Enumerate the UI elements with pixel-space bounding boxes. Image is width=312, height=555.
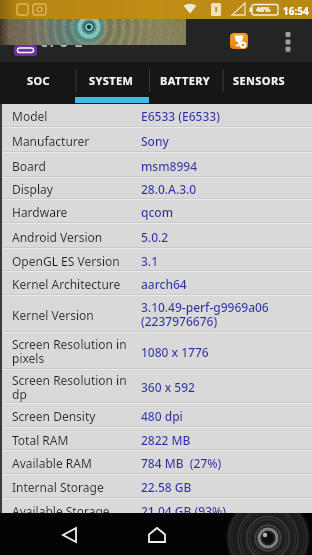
button[interactable]: Available RAM <box>0 451 312 475</box>
staticText: Screen Resolution in pixels <box>12 336 127 367</box>
staticText: 16:54 <box>283 4 309 18</box>
staticText: SYSTEM <box>89 73 134 88</box>
button[interactable]: BATTERY <box>148 62 222 98</box>
staticText: 5.0.2 <box>141 229 169 245</box>
button[interactable]: Display <box>0 178 312 200</box>
staticText: 46% <box>256 5 271 15</box>
button[interactable]: Kernel Architecture <box>0 272 312 296</box>
staticText: SENSORS <box>233 73 286 88</box>
staticText: 3.1 <box>141 253 158 269</box>
staticText: Screen Resolution in dp <box>12 372 127 403</box>
staticText: 480 dpi <box>141 408 183 424</box>
staticText: Kernel Version <box>12 307 94 323</box>
button[interactable]: Manufacturer <box>0 128 312 153</box>
button[interactable]: OpenGL ES Version <box>0 249 312 272</box>
staticText: Manufacturer <box>12 133 90 149</box>
staticText: 21.04 GB (93%) <box>141 503 226 519</box>
staticText: Kernel Architecture <box>12 276 121 292</box>
button[interactable]: SYSTEM <box>75 62 148 98</box>
button[interactable]: Kernel Version <box>0 296 312 333</box>
staticText: 784 MB (27%) <box>141 455 222 471</box>
staticText: Display <box>12 181 53 197</box>
button[interactable] <box>56 527 84 543</box>
staticText: E6533 (E6533) <box>141 108 220 124</box>
button[interactable]: SENSORS <box>222 62 296 98</box>
staticText: msm8994 <box>141 158 198 174</box>
staticText: aarch64 <box>141 276 187 292</box>
staticText: Sony <box>141 133 169 149</box>
button[interactable]: Internal Storage <box>0 475 312 499</box>
staticText: Board <box>12 158 46 174</box>
staticText: 3.10.49-perf-g9969a06 (2237976676) <box>141 299 269 330</box>
button[interactable]: SOC <box>2 62 75 98</box>
button[interactable] <box>281 28 295 56</box>
button[interactable]: Hardware <box>0 200 312 224</box>
staticText: CPU Z <box>40 34 85 50</box>
button[interactable]: Total RAM <box>0 428 312 451</box>
staticText: 22.58 GB <box>141 479 192 495</box>
staticText: Internal Storage <box>12 479 104 495</box>
button[interactable] <box>143 527 171 543</box>
staticText: Available RAM <box>12 455 92 471</box>
staticText: BATTERY <box>160 73 211 88</box>
staticText: 1080 x 1776 <box>141 344 209 360</box>
button[interactable]: Model <box>0 104 312 128</box>
staticText: Total RAM <box>12 432 69 448</box>
staticText: 2822 MB <box>141 432 191 448</box>
staticText: SOC <box>27 73 51 88</box>
staticText: qcom <box>141 204 174 220</box>
staticText: Available Storage <box>12 503 110 519</box>
staticText: Hardware <box>12 204 68 220</box>
button[interactable]: Screen Density <box>0 404 312 428</box>
staticText: 360 x 592 <box>141 379 195 395</box>
staticText: Screen Density <box>12 408 96 424</box>
button[interactable]: Board <box>0 153 312 178</box>
button[interactable]: Android Version <box>0 224 312 249</box>
staticText: 28.0.A.3.0 <box>141 181 197 197</box>
button[interactable]: Available Storage <box>0 499 312 523</box>
button[interactable]: Screen Resolution in pixels <box>0 333 312 370</box>
staticText: Android Version <box>12 229 103 245</box>
staticText: Model <box>12 108 48 124</box>
button[interactable]: Screen Resolution in dp <box>0 370 312 404</box>
button[interactable] <box>230 33 248 49</box>
staticText: OpenGL ES Version <box>12 253 120 269</box>
